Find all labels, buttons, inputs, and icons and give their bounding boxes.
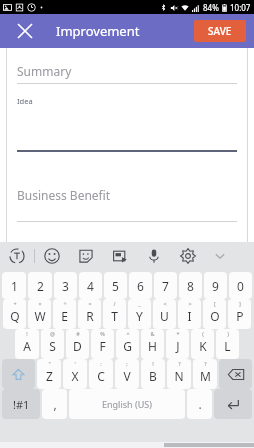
button[interactable]: ? xyxy=(193,359,217,389)
button[interactable]: SAVE xyxy=(194,20,246,42)
button[interactable]: . xyxy=(187,389,212,419)
staticText: M xyxy=(200,368,211,384)
staticText: 2 xyxy=(37,278,44,294)
button[interactable]: 7 xyxy=(154,272,177,299)
button[interactable]: ( xyxy=(191,329,214,359)
button[interactable]: 0 xyxy=(229,272,252,299)
button[interactable]: 9 xyxy=(204,272,227,299)
button[interactable]: " xyxy=(37,359,61,389)
staticText: N xyxy=(174,368,184,384)
button[interactable]: !#1 xyxy=(2,389,40,419)
staticText: ? xyxy=(204,360,207,367)
button[interactable]: + xyxy=(3,299,26,329)
staticText: 9 xyxy=(212,278,219,294)
button[interactable]: Business Benefit xyxy=(17,183,237,207)
button[interactable]: _ xyxy=(128,299,151,329)
staticText: I xyxy=(187,308,192,324)
staticText: A xyxy=(23,338,31,354)
button[interactable]: [ xyxy=(203,299,226,329)
button[interactable]: ! xyxy=(15,329,39,359)
button[interactable]: ^ xyxy=(116,329,139,359)
staticText: V xyxy=(123,368,131,384)
button[interactable]: Settings xyxy=(171,242,205,270)
staticText: ÷ xyxy=(63,300,67,307)
staticText: F xyxy=(99,338,106,354)
staticText: 3 xyxy=(62,278,69,294)
staticText: @ xyxy=(50,330,55,337)
staticText: C xyxy=(97,368,105,384)
staticText: 4 xyxy=(87,278,94,294)
button[interactable]: Summary xyxy=(17,59,237,83)
staticText: 8 xyxy=(187,278,194,294)
staticText: & xyxy=(150,330,155,337)
staticText: × xyxy=(38,300,42,307)
staticText: ) xyxy=(227,330,229,337)
button[interactable]: # xyxy=(66,329,89,359)
button[interactable]: ] xyxy=(228,299,251,329)
button[interactable]: % xyxy=(91,329,114,359)
staticText: = xyxy=(88,300,92,307)
staticText: Business Benefit xyxy=(17,187,111,203)
staticText: G xyxy=(123,338,132,354)
staticText: ' xyxy=(74,360,76,367)
button[interactable]: Stickers xyxy=(69,242,103,270)
staticText: B xyxy=(149,368,157,384)
button[interactable]: ) xyxy=(216,329,239,359)
button[interactable]: 1 xyxy=(2,272,26,299)
staticText: / xyxy=(113,300,116,307)
button[interactable]: Clipboard xyxy=(103,242,137,270)
button[interactable]: 2 xyxy=(28,272,52,299)
button[interactable]: ' xyxy=(63,359,87,389)
button[interactable]: Voice input xyxy=(137,242,171,270)
button[interactable]: * xyxy=(166,329,189,359)
staticText: + xyxy=(13,300,17,307)
button[interactable]: < xyxy=(153,299,176,329)
staticText: < xyxy=(163,300,167,307)
button[interactable]: Hide keyboard xyxy=(205,242,235,270)
button[interactable]: Shift xyxy=(2,359,35,389)
button[interactable]: 6 xyxy=(129,272,152,299)
button[interactable]: / xyxy=(103,299,126,329)
button[interactable]: , xyxy=(42,389,67,419)
staticText: ; xyxy=(126,360,128,367)
button[interactable]: Close xyxy=(12,18,38,44)
staticText: S xyxy=(49,338,56,354)
staticText: D xyxy=(73,338,82,354)
staticText: : xyxy=(100,360,102,367)
staticText: > xyxy=(188,300,192,307)
staticText: English (US) xyxy=(102,398,152,410)
button[interactable]: @ xyxy=(41,329,64,359)
staticText: K xyxy=(199,338,207,354)
button[interactable]: Enter xyxy=(214,389,252,419)
button[interactable]: Backspace xyxy=(219,359,252,389)
button[interactable]: 5 xyxy=(104,272,127,299)
button[interactable]: 3 xyxy=(54,272,77,299)
button[interactable]: : xyxy=(89,359,113,389)
button[interactable]: & xyxy=(141,329,164,359)
button[interactable]: × xyxy=(28,299,51,329)
button[interactable]: ÷ xyxy=(53,299,76,329)
staticText: P xyxy=(236,308,244,324)
button[interactable]: English (US) xyxy=(69,389,185,419)
staticText: _ xyxy=(138,300,141,307)
staticText: 5 xyxy=(112,278,119,294)
button[interactable]: Emoji xyxy=(35,242,69,270)
button[interactable]: ! xyxy=(141,359,165,389)
staticText: ! xyxy=(152,360,154,367)
button[interactable]: > xyxy=(178,299,201,329)
staticText: T xyxy=(111,308,118,324)
button[interactable]: ? xyxy=(167,359,191,389)
staticText: . xyxy=(198,396,202,412)
staticText: SAVE xyxy=(208,24,232,38)
button[interactable]: Idea xyxy=(17,96,237,152)
staticText: , xyxy=(53,396,57,412)
button[interactable]: ; xyxy=(115,359,139,389)
button[interactable]: = xyxy=(78,299,101,329)
staticText: ! xyxy=(26,330,28,337)
staticText: 6 xyxy=(137,278,144,294)
button[interactable]: 4 xyxy=(79,272,102,299)
button[interactable]: 8 xyxy=(179,272,202,299)
staticText: J xyxy=(176,338,180,354)
button[interactable]: Text mode xyxy=(0,242,34,270)
staticText: Q xyxy=(10,308,20,324)
